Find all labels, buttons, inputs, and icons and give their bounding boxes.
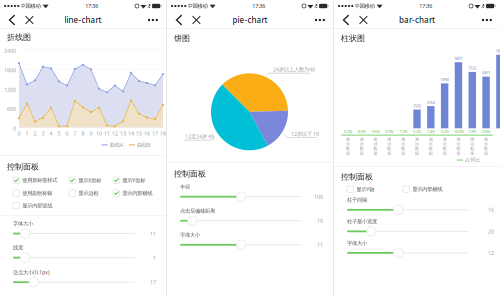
- staticText: 数: [470, 146, 474, 151]
- staticText: 11: [104, 130, 110, 137]
- staticText: 数: [387, 146, 391, 151]
- staticText: 12: [488, 249, 494, 256]
- staticText: 数: [360, 146, 364, 151]
- staticText: 数: [415, 146, 419, 151]
- staticText: 数: [456, 146, 460, 151]
- staticText: 字体大小: [347, 240, 367, 246]
- button[interactable]: 显示Y坐标: [113, 177, 145, 184]
- staticText: 据: [484, 151, 488, 156]
- button[interactable]: Back: [170, 13, 187, 27]
- button[interactable]: More: [143, 13, 163, 27]
- staticText: 0: [17, 130, 20, 137]
- staticText: 交点大小(0.1px): [13, 269, 50, 276]
- staticText: 据: [401, 151, 405, 156]
- staticText: 显示X坐标: [78, 177, 101, 184]
- staticText: 中国移动: [188, 3, 208, 9]
- staticText: 据: [470, 151, 474, 156]
- staticText: 字体大小: [13, 220, 33, 227]
- staticText: 测: [401, 137, 405, 142]
- staticText: 线宽: [13, 245, 23, 251]
- button[interactable]: 显示Y轴: [347, 186, 374, 193]
- staticText: 试: [415, 142, 419, 147]
- staticText: 1800: [4, 67, 16, 74]
- staticText: 9807: [496, 48, 500, 54]
- staticText: 试: [346, 142, 350, 147]
- staticText: 显示Y轴: [356, 186, 374, 193]
- staticText: 测: [443, 137, 447, 142]
- staticText: 曲线A: [110, 141, 123, 148]
- staticText: 据: [360, 151, 364, 156]
- button[interactable]: 显示内部横线: [403, 186, 442, 192]
- button[interactable]: 显示内部横线: [113, 190, 152, 196]
- staticText: 18: [160, 130, 166, 137]
- staticText: 20: [488, 228, 494, 235]
- staticText: 7.3%: [399, 129, 407, 134]
- staticText: 据: [415, 151, 419, 156]
- staticText: 11: [150, 230, 156, 237]
- staticText: 8.6%: [358, 129, 366, 134]
- button[interactable]: Back: [3, 13, 20, 27]
- staticText: 2502: [413, 103, 421, 108]
- staticText: 测: [456, 137, 460, 142]
- staticText: 测: [484, 137, 488, 142]
- staticText: 17: [152, 130, 158, 137]
- button[interactable]: 显示边框: [69, 190, 98, 196]
- staticText: 16: [144, 130, 150, 137]
- staticText: 柱子最小宽度: [347, 218, 377, 225]
- staticText: 17: [150, 279, 156, 286]
- button[interactable]: Back: [337, 13, 354, 27]
- button[interactable]: 使用新标签样式: [13, 177, 57, 184]
- staticText: 据: [443, 151, 447, 156]
- staticText: 测: [360, 137, 364, 142]
- button[interactable]: 使用副坐标轴: [13, 190, 52, 196]
- staticText: pie-chart: [232, 15, 267, 25]
- staticText: 据: [387, 151, 391, 156]
- staticText: 曲线B: [137, 141, 150, 148]
- staticText: 8821: [454, 56, 462, 61]
- staticText: 显示内部横线: [412, 186, 442, 192]
- staticText: 测: [429, 137, 433, 142]
- button[interactable]: Close: [354, 13, 373, 27]
- staticText: 15: [136, 130, 142, 137]
- staticText: 占环比: [465, 157, 480, 163]
- staticText: 试: [387, 142, 391, 147]
- staticText: 600: [7, 105, 16, 113]
- button[interactable]: More: [310, 13, 330, 27]
- staticText: 试: [373, 142, 377, 147]
- staticText: 10: [317, 217, 323, 224]
- staticText: 试: [443, 142, 447, 147]
- button[interactable]: 显示X坐标: [69, 177, 101, 184]
- staticText: 据: [456, 151, 460, 156]
- staticText: 100: [314, 193, 323, 200]
- staticText: 柱状图: [341, 33, 365, 43]
- staticText: 0.8%: [482, 129, 490, 134]
- staticText: 点击后偏移距离: [180, 208, 215, 214]
- staticText: line-chart: [64, 15, 101, 25]
- staticText: 据: [346, 151, 350, 156]
- staticText: 试: [484, 142, 488, 147]
- staticText: 数: [346, 146, 350, 151]
- staticText: 5.3%: [413, 129, 421, 134]
- staticText: 中国移动: [21, 3, 41, 9]
- staticText: 6897: [482, 70, 490, 75]
- staticText: 12岁以下 19: [291, 130, 319, 137]
- button[interactable]: Close: [20, 13, 39, 27]
- staticText: 显示内部竖线: [22, 202, 52, 209]
- staticText: 12: [112, 130, 118, 137]
- staticText: 饼图: [174, 33, 190, 43]
- button[interactable]: More: [477, 13, 497, 27]
- staticText: 10: [96, 130, 102, 137]
- staticText: 17:36: [252, 2, 265, 10]
- staticText: 柱子间隔: [347, 197, 367, 203]
- button[interactable]: Close: [187, 13, 206, 27]
- staticText: 17:36: [419, 2, 432, 10]
- staticText: 1: [25, 130, 28, 137]
- button[interactable]: 显示内部竖线: [13, 202, 52, 209]
- staticText: 7525: [468, 65, 476, 71]
- staticText: 测: [470, 137, 474, 142]
- staticText: 数: [401, 146, 405, 151]
- staticText: 半径: [180, 184, 190, 190]
- staticText: 7.8%: [468, 129, 476, 134]
- staticText: 3: [41, 130, 44, 137]
- staticText: 9.6%: [371, 129, 379, 134]
